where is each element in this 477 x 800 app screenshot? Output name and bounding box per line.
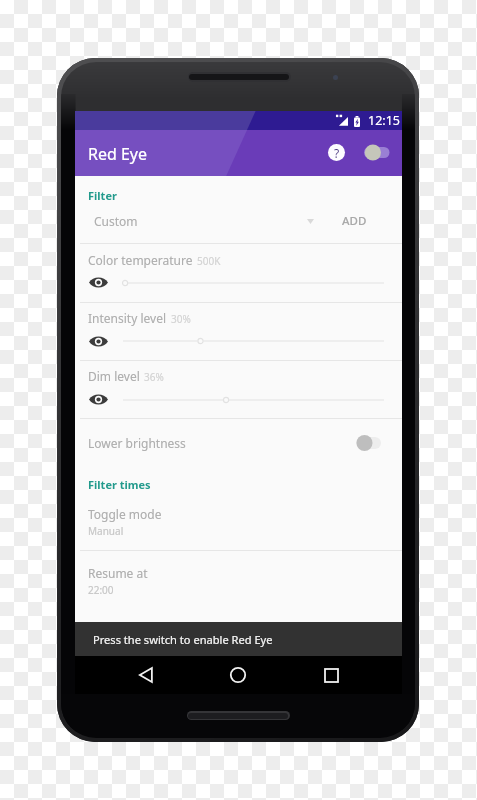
staticText: Toggle mode bbox=[88, 506, 162, 522]
staticText: 30% bbox=[171, 312, 191, 326]
staticText: 12:15 bbox=[368, 112, 400, 129]
button[interactable]: Enable Red Eye bbox=[356, 141, 394, 164]
staticText: 36% bbox=[144, 370, 164, 384]
staticText: Filter times bbox=[88, 477, 151, 492]
staticText: Intensity level bbox=[88, 310, 167, 326]
staticText: 22:00 bbox=[88, 583, 114, 597]
staticText: ADD bbox=[342, 213, 367, 229]
button[interactable]: Recents bbox=[316, 660, 346, 690]
button[interactable]: Custom bbox=[75, 205, 402, 235]
staticText: Resume at bbox=[88, 565, 148, 581]
staticText: Filter bbox=[88, 188, 117, 203]
button[interactable]: Toggle mode bbox=[75, 501, 402, 546]
staticText: 500K bbox=[197, 254, 221, 268]
button[interactable]: Back bbox=[131, 660, 161, 690]
staticText: ? bbox=[334, 145, 340, 161]
button[interactable]: Home bbox=[223, 660, 253, 690]
staticText: Dim level bbox=[88, 368, 140, 384]
staticText: Lower brightness bbox=[88, 435, 186, 451]
staticText: Custom bbox=[94, 213, 138, 229]
staticText: Color temperature bbox=[88, 252, 193, 268]
staticText: Manual bbox=[88, 524, 124, 538]
button[interactable]: Help bbox=[325, 141, 348, 164]
button[interactable]: Lower brightness bbox=[75, 419, 402, 466]
staticText: Red Eye bbox=[88, 143, 148, 165]
button[interactable]: Resume at bbox=[75, 560, 402, 605]
staticText: Press the switch to enable Red Eye bbox=[93, 632, 273, 647]
